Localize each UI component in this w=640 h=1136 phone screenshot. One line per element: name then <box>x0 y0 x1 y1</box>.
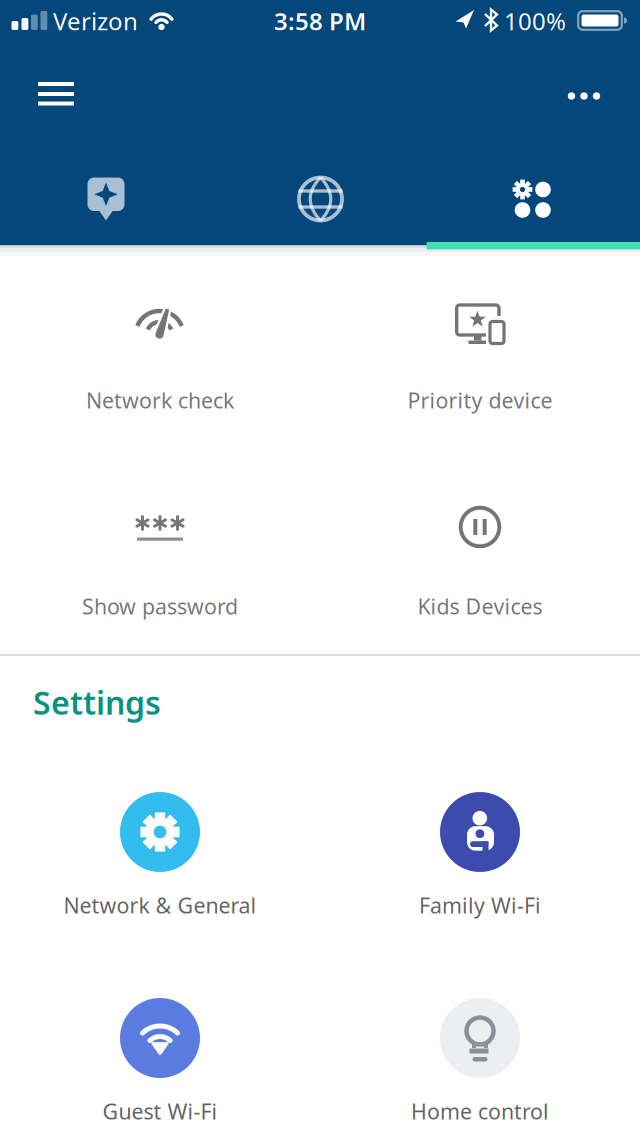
button[interactable] <box>427 150 640 245</box>
staticText: Network & General <box>63 891 256 919</box>
button[interactable] <box>24 68 88 120</box>
staticText: Kids Devices <box>417 592 542 620</box>
staticText: Home control <box>411 1097 549 1125</box>
staticText: Priority device <box>407 386 552 414</box>
staticText: Guest Wi-Fi <box>102 1097 217 1125</box>
button[interactable] <box>553 78 614 114</box>
button[interactable]: Show password <box>0 454 320 660</box>
staticText: Network check <box>86 386 234 414</box>
button[interactable]: Family Wi-Fi <box>320 770 640 928</box>
staticText: Show password <box>82 592 238 620</box>
button[interactable]: Priority device <box>320 248 640 454</box>
staticText: 3:58 PM <box>274 5 366 37</box>
button[interactable]: Guest Wi-Fi <box>0 976 320 1134</box>
button[interactable]: Kids Devices <box>320 454 640 660</box>
staticText: Verizon <box>53 5 138 37</box>
staticText: 100% <box>504 5 566 37</box>
button[interactable]: Home control <box>320 976 640 1134</box>
button[interactable] <box>213 150 427 245</box>
button[interactable]: Network & General <box>0 770 320 928</box>
button[interactable]: Network check <box>0 248 320 454</box>
staticText: Family Wi-Fi <box>419 891 541 919</box>
button[interactable] <box>0 150 213 245</box>
staticText: Settings <box>33 681 161 723</box>
